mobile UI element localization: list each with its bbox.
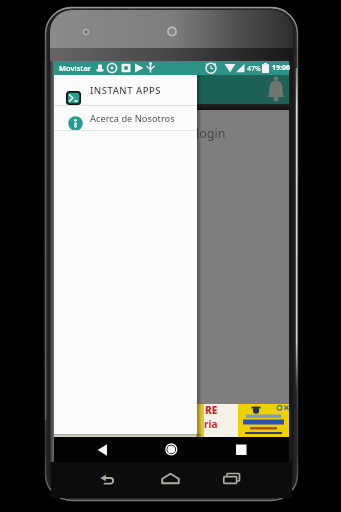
- button[interactable]: INSTANT APPS: [54, 75, 197, 105]
- staticText: INSTANT APPS: [90, 84, 162, 97]
- button[interactable]: [161, 439, 182, 460]
- button[interactable]: Acerca de Nosotros: [54, 106, 197, 130]
- staticText: 19:06: [272, 63, 290, 73]
- staticText: ria: [204, 417, 218, 431]
- button[interactable]: [238, 404, 289, 437]
- button[interactable]: [95, 439, 115, 459]
- staticText: login: [196, 125, 226, 142]
- staticText: Movistar: [59, 63, 92, 73]
- button[interactable]: [231, 439, 251, 459]
- button[interactable]: [262, 75, 289, 104]
- staticText: 47%: [247, 64, 261, 74]
- staticText: Acerca de Nosotros: [90, 112, 175, 125]
- staticText: RE: [205, 403, 218, 417]
